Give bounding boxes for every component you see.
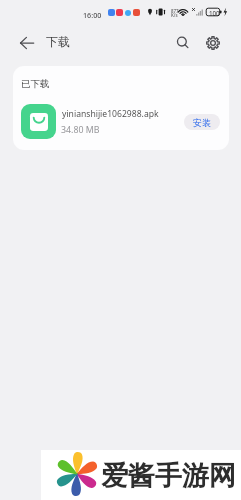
staticText: 已下载: [21, 78, 50, 90]
staticText: yinianshijie1062988.apk: [62, 108, 159, 120]
button[interactable]: Back: [13, 29, 40, 56]
staticText: 16:00: [83, 10, 102, 20]
staticText: 安装: [193, 117, 211, 128]
staticText: 34.80 MB: [61, 124, 100, 136]
staticText: 下载: [46, 34, 70, 49]
staticText: 100: [209, 9, 220, 17]
button[interactable]: Search: [169, 29, 196, 56]
staticText: K/s: [171, 12, 178, 18]
button[interactable]: 安装: [184, 114, 220, 130]
staticText: 877: [171, 8, 179, 14]
button[interactable]: yinianshijie1062988.apk: [13, 99, 229, 144]
button[interactable]: Settings: [199, 29, 226, 56]
staticText: 爱酱手游网: [101, 459, 236, 493]
